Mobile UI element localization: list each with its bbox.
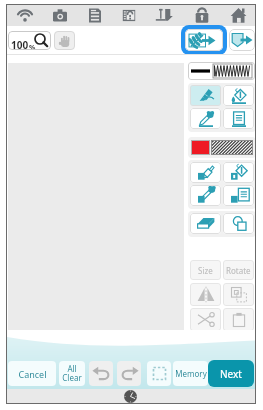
button[interactable]: Region brush: [190, 162, 221, 183]
button[interactable]: Clock: [124, 390, 137, 403]
button[interactable]: Mirror: [190, 283, 221, 306]
button[interactable]: Zoom level 100 percent: [8, 31, 51, 50]
button[interactable]: Pen: [190, 85, 221, 106]
staticText: 100: [11, 38, 29, 50]
button[interactable]: [7, 5, 255, 26]
staticText: Rotate: [226, 265, 251, 276]
button[interactable]: Import design: [181, 25, 227, 55]
button[interactable]: Cancel: [8, 361, 56, 386]
button[interactable]: Pan: [54, 31, 75, 50]
button[interactable]: Region pattern: [223, 185, 254, 206]
button[interactable]: Cut: [190, 308, 221, 331]
staticText: Memory: [175, 368, 207, 379]
button[interactable]: Next: [208, 360, 254, 387]
button[interactable]: Select area: [147, 361, 171, 386]
button[interactable]: Paste: [223, 308, 254, 331]
button[interactable]: Line width and stitch pattern: [188, 62, 255, 80]
button[interactable]: Size: [190, 260, 221, 280]
button[interactable]: Rotate: [223, 260, 254, 280]
button[interactable]: Thread colour red: [191, 140, 210, 155]
staticText: Size: [198, 265, 213, 276]
staticText: All Clear: [62, 363, 82, 384]
button[interactable]: Region fill: [223, 162, 254, 183]
staticText: Next: [220, 367, 242, 381]
button[interactable]: Eraser: [190, 213, 221, 234]
button[interactable]: Duplicate: [223, 283, 254, 306]
staticText: Cancel: [18, 368, 47, 380]
button[interactable]: Paint bucket: [223, 85, 254, 106]
button[interactable]: Eyedropper: [190, 108, 221, 129]
staticText: %: [29, 43, 36, 50]
button[interactable]: Region eyedropper: [190, 185, 221, 206]
button[interactable]: Stitch pattern: [223, 108, 254, 129]
button[interactable]: Export design: [229, 29, 255, 51]
button[interactable]: Fill pattern: [211, 140, 253, 155]
button[interactable]: Redo: [117, 361, 141, 386]
button[interactable]: Undo: [89, 361, 113, 386]
button[interactable]: Shapes: [223, 213, 254, 234]
button[interactable]: All Clear: [59, 361, 85, 386]
button[interactable]: Memory: [173, 361, 208, 386]
